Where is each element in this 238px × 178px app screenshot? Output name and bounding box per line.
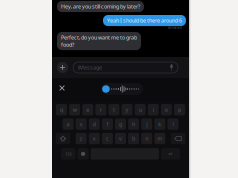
button[interactable]: Return	[161, 148, 180, 160]
staticText: i	[153, 106, 154, 113]
staticText: Delivered	[168, 26, 182, 29]
button[interactable]: r	[95, 104, 106, 115]
button[interactable]: d	[89, 118, 100, 130]
staticText: 123	[65, 151, 71, 156]
staticText: Yeah I should be there around 6	[107, 17, 182, 24]
button[interactable]: i	[148, 104, 159, 115]
staticText: d	[93, 121, 96, 128]
staticText: q	[60, 106, 63, 113]
button[interactable]: Add attachment	[57, 62, 68, 73]
button[interactable]: f	[102, 118, 113, 130]
button[interactable]: g	[115, 118, 126, 130]
button[interactable]: k	[154, 118, 165, 130]
staticText: l	[172, 121, 173, 128]
staticText: y	[125, 106, 128, 113]
staticText: b	[132, 135, 135, 142]
button[interactable]: n	[141, 133, 152, 144]
button[interactable]: l	[167, 118, 178, 130]
button[interactable]: b	[128, 133, 139, 144]
button[interactable]: v	[115, 133, 126, 144]
staticText: k	[158, 121, 161, 128]
button[interactable]: iMessage	[73, 62, 178, 73]
staticText: ↵	[168, 151, 172, 157]
staticText: Perfect, do you want me to grab food?	[61, 34, 137, 48]
button[interactable]: Shift	[56, 133, 70, 144]
staticText: u	[139, 106, 142, 113]
button[interactable]: e	[82, 104, 93, 115]
button[interactable]: u	[135, 104, 146, 115]
button[interactable]: p	[174, 104, 185, 115]
staticText: r	[100, 106, 102, 113]
button[interactable]: Emoji	[78, 148, 89, 160]
button[interactable]: z	[76, 133, 87, 144]
button[interactable]: x	[89, 133, 100, 144]
staticText: w	[73, 106, 77, 113]
button[interactable]: q	[56, 104, 67, 115]
button[interactable]: a	[63, 118, 74, 130]
button[interactable]: o	[161, 104, 172, 115]
button[interactable]: Cancel	[57, 83, 67, 93]
staticText: m	[157, 135, 162, 142]
button[interactable]: t	[108, 104, 119, 115]
staticText: iMessage	[78, 64, 102, 71]
button[interactable]: c	[102, 133, 113, 144]
button[interactable]: s	[76, 118, 87, 130]
staticText: n	[145, 135, 148, 142]
staticText: e	[86, 106, 89, 113]
staticText: Hey, are you still coming by later?	[61, 3, 140, 10]
button[interactable]: h	[128, 118, 139, 130]
button[interactable]: w	[69, 104, 80, 115]
button[interactable]: y	[121, 104, 132, 115]
button[interactable]: m	[154, 133, 165, 144]
staticText: t	[113, 106, 115, 113]
staticText: z	[80, 135, 83, 142]
staticText: f	[106, 121, 108, 128]
staticText: v	[119, 135, 122, 142]
staticText: p	[178, 106, 181, 113]
staticText: o	[165, 106, 168, 113]
staticText: x	[93, 135, 96, 142]
staticText: h	[132, 121, 135, 128]
button[interactable]: Numbers	[61, 148, 75, 160]
staticText: j	[146, 121, 147, 128]
staticText: s	[80, 121, 83, 128]
staticText: g	[119, 121, 122, 128]
button[interactable]: j	[141, 118, 152, 130]
staticText: c	[106, 135, 109, 142]
staticText: a	[67, 121, 70, 128]
button[interactable]: Delete	[171, 133, 185, 144]
